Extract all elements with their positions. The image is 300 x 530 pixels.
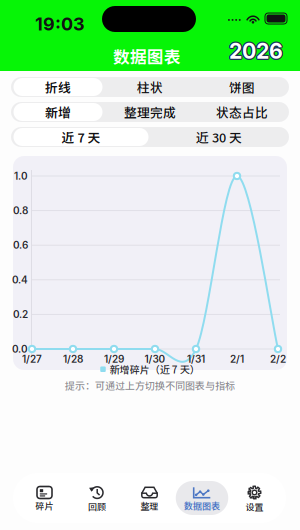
- button[interactable]: 折线: [12, 77, 104, 97]
- staticText: 数据图表: [184, 499, 220, 512]
- staticText: 数据图表: [113, 44, 181, 68]
- staticText: 近 30 天: [196, 128, 242, 146]
- staticText: 提示：可通过上方切换不同图表与指标: [65, 378, 235, 392]
- staticText: 0.0: [12, 343, 28, 355]
- button[interactable]: 柱状: [104, 77, 196, 97]
- staticText: 2026: [228, 39, 282, 65]
- staticText: 2026: [229, 38, 283, 64]
- staticText: 0.8: [13, 205, 28, 217]
- button[interactable]: 饼图: [196, 77, 288, 97]
- staticText: 回顾: [88, 500, 106, 513]
- button[interactable]: 近 30 天: [150, 127, 288, 147]
- staticText: 1/29: [104, 353, 124, 365]
- staticText: 状态占比: [216, 103, 268, 121]
- staticText: 整理: [140, 499, 158, 512]
- staticText: 1.0: [14, 170, 28, 182]
- staticText: 0.4: [12, 274, 28, 286]
- button[interactable]: 碎片: [18, 481, 71, 515]
- staticText: 折线: [45, 78, 71, 96]
- staticText: 2026: [230, 38, 284, 64]
- staticText: 近 7 天: [61, 128, 100, 146]
- staticText: 2026: [229, 37, 283, 63]
- staticText: 0.2: [13, 308, 28, 320]
- button[interactable]: 数据图表: [176, 481, 228, 515]
- staticText: 0.6: [13, 239, 28, 251]
- button[interactable]: 整理: [123, 481, 176, 515]
- staticText: 1/28: [63, 353, 83, 365]
- staticText: 设置: [245, 500, 263, 513]
- staticText: 2026: [228, 37, 282, 63]
- staticText: 新增碎片（近 7 天）: [110, 362, 200, 376]
- staticText: 1/31: [187, 353, 205, 365]
- staticText: 碎片: [35, 499, 53, 512]
- staticText: 1/27: [22, 353, 42, 365]
- staticText: 柱状: [137, 78, 163, 96]
- button[interactable]: 状态占比: [196, 102, 288, 122]
- button[interactable]: 近 7 天: [12, 127, 150, 147]
- button[interactable]: 回顾: [71, 481, 123, 515]
- button[interactable]: 2026: [228, 39, 284, 63]
- staticText: 2026: [230, 37, 284, 63]
- staticText: 饼图: [229, 78, 255, 96]
- staticText: 2026: [230, 39, 284, 65]
- button[interactable]: 设置: [228, 481, 281, 515]
- staticText: 2026: [229, 39, 283, 65]
- staticText: 整理完成: [124, 103, 176, 121]
- staticText: 2/2: [270, 353, 286, 365]
- button[interactable]: 新增: [12, 102, 104, 122]
- staticText: 新增: [45, 103, 71, 121]
- staticText: 19:03: [35, 13, 85, 35]
- staticText: 2026: [228, 38, 282, 64]
- button[interactable]: 整理完成: [104, 102, 196, 122]
- staticText: 1/30: [144, 353, 165, 365]
- staticText: 2/1: [230, 353, 244, 365]
